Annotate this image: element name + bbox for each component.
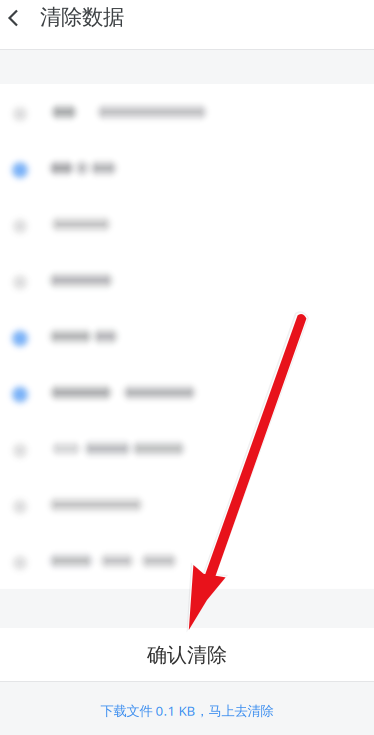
button[interactable] (0, 252, 374, 308)
button[interactable] (0, 477, 374, 533)
button[interactable]: 确认清除 (0, 628, 374, 682)
button[interactable] (0, 421, 374, 477)
button[interactable] (0, 308, 374, 364)
button[interactable] (0, 533, 374, 589)
button[interactable] (0, 196, 374, 252)
button[interactable] (0, 140, 374, 196)
staticText: 确认清除 (147, 643, 227, 667)
button[interactable]: 下载文件 0.1 KB，马上去清除 (0, 682, 374, 735)
button[interactable] (0, 84, 374, 140)
button[interactable] (0, 364, 374, 421)
staticText: 清除数据 (40, 4, 124, 30)
button[interactable]: Back (0, 0, 36, 36)
staticText: 下载文件 0.1 KB，马上去清除 (100, 702, 273, 719)
